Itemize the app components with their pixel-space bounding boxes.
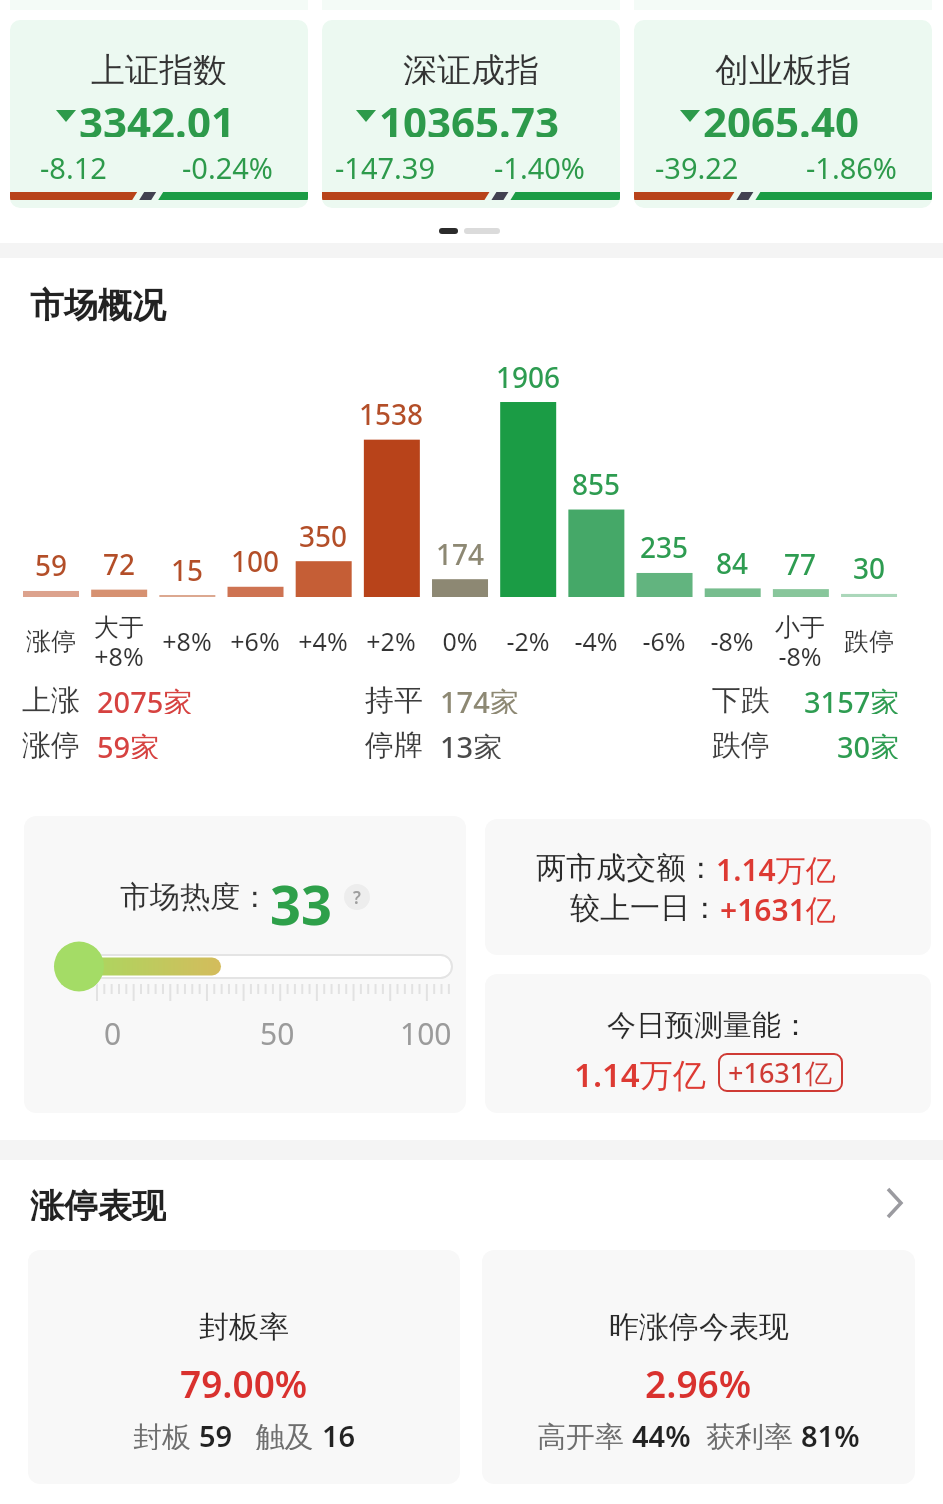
staticText: 3157家 (804, 682, 900, 714)
staticText: 16 (322, 1416, 356, 1450)
staticText: 停牌 (365, 727, 423, 759)
staticText: +8% (162, 624, 212, 658)
staticText: 较上一日： (570, 889, 720, 925)
button[interactable]: 创业板指 (634, 20, 932, 208)
staticText: 封板 (133, 1416, 199, 1450)
staticText: 15 (171, 551, 204, 581)
staticText: -6% (642, 624, 686, 658)
staticText: 3342.01 (79, 93, 235, 137)
staticText: 2.96% (645, 1358, 752, 1398)
button[interactable]: 昨涨停今表现 (482, 1250, 915, 1484)
staticText: +2% (366, 624, 416, 658)
staticText: 跌停 (712, 727, 770, 759)
staticText: 2075家 (97, 682, 193, 714)
staticText: 获利率 (691, 1416, 801, 1450)
staticText: -8% (710, 624, 754, 658)
staticText: 59 (35, 546, 68, 576)
staticText: 30家 (837, 727, 900, 759)
staticText: 59家 (97, 727, 160, 759)
button[interactable]: 两市成交额： (485, 819, 931, 955)
staticText: 触及 (233, 1416, 322, 1450)
staticText: 创业板指 (715, 49, 851, 85)
staticText: 涨停 (22, 727, 80, 759)
staticText: -39.22 (655, 148, 739, 180)
staticText: 上涨 (22, 682, 80, 714)
staticText: 0 (104, 1013, 122, 1045)
staticText: 市场概况 (30, 284, 166, 327)
staticText: -0.24% (182, 148, 273, 180)
staticText: 小于 -8% (775, 612, 825, 670)
staticText: 100 (400, 1013, 452, 1045)
staticText: 84 (716, 544, 749, 574)
button[interactable]: 深证成指 (322, 20, 620, 208)
staticText: 350 (299, 517, 348, 547)
staticText: 235 (640, 528, 689, 558)
staticText: 涨停表现 (30, 1185, 166, 1221)
button[interactable]: 市场热度： (24, 816, 466, 1113)
staticText: 1.14万亿 (716, 849, 836, 885)
staticText: 持平 (365, 682, 423, 714)
staticText: 10365.73 (379, 93, 559, 137)
staticText: 79.00% (180, 1358, 308, 1398)
staticText: -1.86% (806, 148, 897, 180)
staticText: 1.14万亿 (574, 1052, 706, 1092)
staticText: 30 (853, 549, 886, 579)
staticText: -147.39 (335, 148, 436, 180)
staticText: 2065.40 (703, 93, 859, 137)
staticText: 81% (801, 1416, 860, 1450)
staticText: -8.12 (40, 148, 107, 180)
staticText: -4% (574, 624, 618, 658)
staticText: +1631亿 (728, 1054, 833, 1091)
staticText: 深证成指 (403, 49, 539, 85)
staticText: 昨涨停今表现 (609, 1308, 789, 1342)
staticText: +6% (230, 624, 280, 658)
staticText: 44% (632, 1416, 691, 1450)
staticText: 59 (199, 1416, 233, 1450)
staticText: 两市成交额： (536, 849, 716, 885)
staticText: 封板率 (199, 1308, 289, 1342)
button[interactable]: 封板率 (28, 1250, 460, 1484)
staticText: +1631亿 (720, 889, 836, 925)
staticText: 1538 (359, 395, 424, 425)
staticText: 下跌 (712, 682, 770, 714)
staticText: 174 (436, 535, 485, 565)
staticText: ? (353, 886, 361, 909)
button[interactable] (870, 1180, 920, 1226)
staticText: +4% (298, 624, 348, 658)
staticText: 高开率 (537, 1416, 632, 1450)
button[interactable]: 今日预测量能： (485, 974, 931, 1113)
staticText: -2% (506, 624, 550, 658)
staticText: 174家 (440, 682, 519, 714)
staticText: 上证指数 (91, 49, 227, 85)
staticText: 50 (260, 1013, 295, 1045)
staticText: 大于 +8% (94, 612, 144, 670)
staticText: 跌停 (844, 626, 894, 657)
staticText: 0% (442, 624, 478, 658)
staticText: 855 (572, 465, 621, 495)
staticText: 1906 (496, 358, 561, 388)
staticText: 77 (784, 545, 817, 575)
staticText: -1.40% (494, 148, 585, 180)
staticText: 33 (270, 867, 332, 927)
staticText: 涨停 (26, 626, 76, 657)
staticText: 今日预测量能： (607, 1007, 810, 1041)
staticText: 72 (103, 545, 136, 575)
staticText: 13家 (440, 727, 503, 759)
button[interactable]: 上证指数 (10, 20, 308, 208)
staticText: 100 (231, 542, 280, 572)
staticText: 市场热度： (120, 878, 270, 916)
